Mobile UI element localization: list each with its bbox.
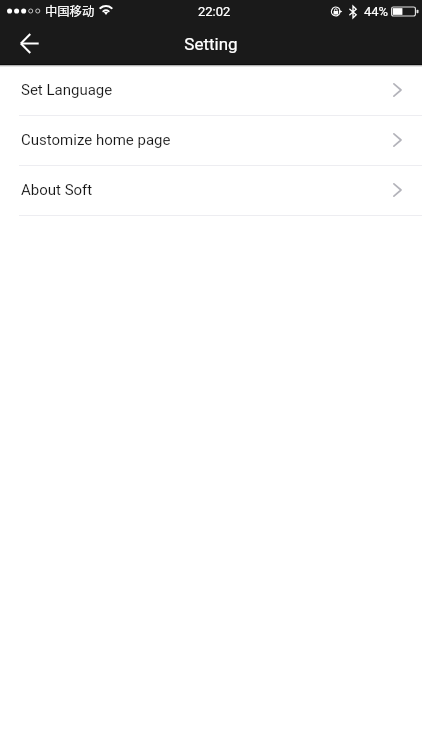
staticText: Setting [184, 34, 238, 54]
button[interactable]: Set Language [0, 65, 422, 115]
staticText: Set Language [21, 81, 113, 99]
staticText: 中国移动 [45, 2, 95, 20]
staticText: 22:02 [198, 4, 231, 19]
button[interactable]: About Soft [0, 165, 422, 215]
button[interactable]: Customize home page [0, 115, 422, 165]
staticText: 44% [364, 4, 389, 19]
staticText: About Soft [21, 181, 93, 199]
button[interactable]: Back [0, 22, 56, 65]
staticText: Customize home page [21, 131, 171, 149]
